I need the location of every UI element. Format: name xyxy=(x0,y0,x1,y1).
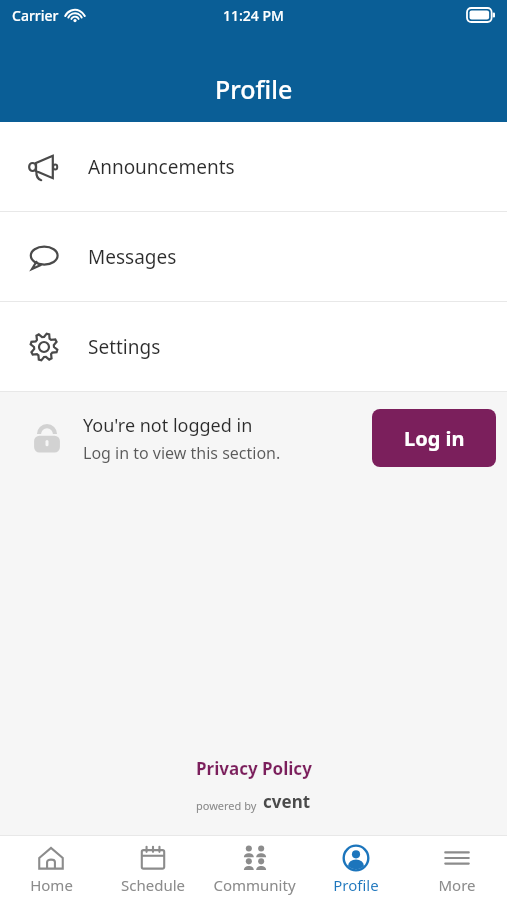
button[interactable]: Privacy Policy xyxy=(196,757,312,780)
staticText: Settings xyxy=(88,334,161,360)
button[interactable]: Schedule xyxy=(102,836,204,900)
button[interactable]: Profile xyxy=(305,836,406,900)
staticText: You're not logged in xyxy=(83,413,253,438)
button[interactable]: Settings xyxy=(0,302,507,391)
staticText: Announcements xyxy=(88,154,235,180)
button[interactable]: Community xyxy=(204,836,305,900)
staticText: Home xyxy=(30,875,73,895)
staticText: cvent xyxy=(263,790,311,813)
button[interactable]: Messages xyxy=(0,212,507,301)
staticText: Schedule xyxy=(121,875,185,895)
staticText: powered by xyxy=(196,798,257,813)
staticText: Community xyxy=(213,875,296,895)
staticText: Log in xyxy=(404,425,465,452)
staticText: Log in to view this section. xyxy=(83,442,281,464)
staticText: Messages xyxy=(88,244,177,270)
button[interactable]: Announcements xyxy=(0,122,507,211)
staticText: 11:24 PM xyxy=(223,6,284,25)
staticText: More xyxy=(438,875,476,895)
staticText: Profile xyxy=(333,875,379,895)
staticText: Carrier xyxy=(12,6,59,25)
button[interactable]: More xyxy=(406,836,507,900)
staticText: Profile xyxy=(215,72,293,106)
button[interactable]: Home xyxy=(0,836,102,900)
button[interactable]: Log in xyxy=(372,409,496,467)
